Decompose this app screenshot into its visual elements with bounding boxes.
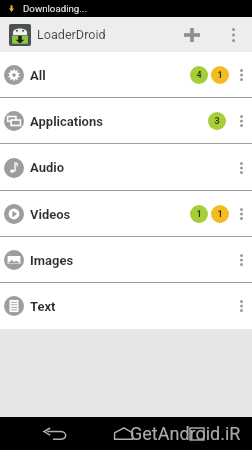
staticText: Text bbox=[30, 299, 56, 314]
button[interactable]: Item options bbox=[231, 52, 252, 98]
staticText: 1 bbox=[217, 209, 223, 220]
button[interactable]: Add download bbox=[173, 17, 211, 52]
staticText: All bbox=[30, 68, 46, 83]
button[interactable]: Item options bbox=[231, 283, 252, 329]
button[interactable]: Item options bbox=[231, 191, 252, 237]
button[interactable]: Item options bbox=[231, 237, 252, 283]
staticText: LoaderDroid bbox=[37, 27, 106, 42]
button[interactable]: All bbox=[0, 52, 252, 98]
staticText: 1 bbox=[196, 209, 202, 220]
button[interactable]: Recent apps bbox=[174, 417, 220, 450]
button[interactable]: Applications bbox=[0, 98, 252, 144]
staticText: Videos bbox=[30, 207, 71, 222]
button[interactable]: Audio bbox=[0, 144, 252, 191]
button[interactable]: Videos bbox=[0, 191, 252, 237]
staticText: 4 bbox=[196, 70, 202, 81]
button[interactable]: Home bbox=[100, 417, 146, 450]
staticText: Applications bbox=[30, 114, 103, 129]
staticText: GetAndroid.iR bbox=[130, 423, 241, 444]
button[interactable]: Text bbox=[0, 283, 252, 329]
button[interactable]: Item options bbox=[231, 144, 252, 191]
staticText: Downloading... bbox=[23, 3, 87, 14]
staticText: Audio bbox=[30, 160, 65, 175]
button[interactable]: More options bbox=[217, 17, 249, 52]
button[interactable]: Back bbox=[32, 417, 78, 450]
staticText: 3 bbox=[214, 116, 220, 127]
button[interactable]: Images bbox=[0, 237, 252, 283]
staticText: 1 bbox=[217, 70, 223, 81]
staticText: Images bbox=[30, 253, 74, 268]
button[interactable]: Item options bbox=[231, 98, 252, 144]
